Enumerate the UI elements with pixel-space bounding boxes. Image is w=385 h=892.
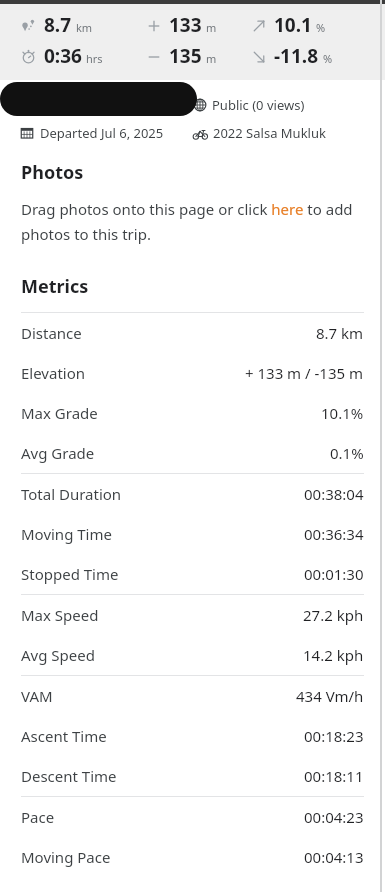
staticText: 0.1%: [330, 443, 364, 463]
button[interactable]: Max grade: [250, 12, 326, 38]
button[interactable]: Drag photos onto this page or click here…: [21, 199, 365, 244]
staticText: Max Grade: [21, 403, 98, 423]
staticText: Stopped Time: [21, 564, 119, 584]
staticText: 434 Vm/h: [296, 686, 364, 706]
staticText: Moving Pace: [21, 847, 111, 867]
staticText: 14.2 kph: [303, 645, 364, 665]
staticText: 27.2 kph: [303, 605, 364, 625]
staticText: Max Speed: [21, 605, 99, 625]
staticText: hrs: [86, 51, 103, 66]
button[interactable]: Max Grade: [0, 393, 385, 433]
button[interactable]: Avg Grade: [0, 433, 385, 473]
other: Elevation gain: [145, 17, 162, 34]
button[interactable]: Pace: [0, 797, 385, 837]
staticText: Pace: [21, 807, 55, 827]
staticText: 10.1%: [321, 403, 364, 423]
staticText: Departed Jul 6, 2025: [40, 124, 164, 142]
other: Min grade: [250, 48, 267, 65]
staticText: 8.7 km: [316, 323, 364, 343]
button[interactable]: Bike: [193, 124, 326, 142]
staticText: 133: [169, 12, 202, 38]
staticText: Total Duration: [21, 484, 122, 504]
staticText: Metrics: [21, 274, 89, 299]
staticText: 00:01:30: [304, 564, 364, 584]
staticText: Ascent Time: [21, 726, 107, 746]
button[interactable]: Avg Speed: [0, 635, 385, 675]
button[interactable]: Total Duration: [0, 474, 385, 514]
other: Privacy: [193, 98, 207, 112]
staticText: Moving Time: [21, 524, 112, 544]
staticText: Photos: [21, 160, 84, 185]
staticText: km: [76, 20, 93, 35]
button[interactable]: Elevation loss: [145, 43, 250, 69]
staticText: Elevation: [21, 363, 86, 383]
other: Duration: [20, 48, 37, 65]
button[interactable]: VAM: [0, 676, 385, 716]
other: Bike: [193, 126, 208, 141]
button[interactable]: Elevation gain: [145, 12, 250, 38]
staticText: Avg Grade: [21, 443, 95, 463]
staticText: %: [316, 20, 326, 35]
other: Distance: [20, 17, 37, 34]
button[interactable]: Descent Time: [0, 756, 385, 796]
staticText: 00:36:34: [304, 524, 364, 544]
button[interactable]: Moving Time: [0, 514, 385, 554]
button[interactable]: Max Speed: [0, 595, 385, 635]
staticText: 00:38:04: [304, 484, 364, 504]
button[interactable]: Moving Pace: [0, 837, 385, 877]
staticText: Public (0 views): [212, 96, 305, 114]
button[interactable]: Ascent Time: [0, 716, 385, 756]
staticText: Distance: [21, 323, 82, 343]
staticText: -11.8: [274, 43, 319, 69]
staticText: %: [323, 51, 333, 66]
button[interactable]: Elevation: [0, 353, 385, 393]
button[interactable]: Privacy: [193, 96, 305, 114]
button[interactable]: Min grade: [250, 43, 333, 69]
other: Elevation loss: [145, 48, 162, 65]
staticText: 00:18:23: [304, 726, 364, 746]
staticText: 0:36: [44, 43, 82, 69]
staticText: m: [206, 51, 217, 66]
staticText: 00:04:23: [304, 807, 364, 827]
staticText: 8.7: [44, 12, 72, 38]
staticText: 2022 Salsa Mukluk: [213, 124, 326, 142]
staticText: VAM: [21, 686, 53, 706]
button[interactable]: Date: [20, 124, 164, 142]
button[interactable]: Distance: [0, 313, 385, 353]
staticText: Descent Time: [21, 766, 117, 786]
button[interactable]: Duration: [20, 43, 145, 69]
staticText: Avg Speed: [21, 645, 95, 665]
staticText: 135: [169, 43, 202, 69]
staticText: m: [206, 20, 217, 35]
button[interactable]: Distance: [20, 12, 145, 38]
button[interactable]: Stopped Time: [0, 554, 385, 594]
staticText: 10.1: [274, 12, 312, 38]
other: Max grade: [250, 17, 267, 34]
other: Date: [20, 126, 34, 140]
staticText: 00:18:11: [304, 766, 364, 786]
staticText: 00:04:13: [304, 847, 364, 867]
staticText: + 133 m / -135 m: [245, 363, 364, 383]
